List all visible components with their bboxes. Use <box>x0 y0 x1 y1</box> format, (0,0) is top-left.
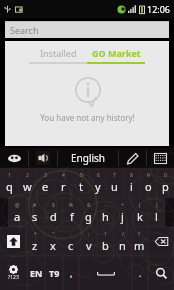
staticText: b <box>102 238 109 253</box>
button[interactable]: English <box>58 148 118 168</box>
button[interactable]: & <box>80 198 97 227</box>
button[interactable]: GO Market <box>87 47 145 64</box>
button[interactable]: T9 <box>45 256 63 290</box>
button[interactable]: 1 <box>0 168 18 198</box>
staticText: q <box>6 179 13 194</box>
button[interactable]: + <box>114 198 131 227</box>
staticText: Search <box>10 24 39 36</box>
staticText: 7 <box>113 172 116 179</box>
staticText: * <box>34 231 37 238</box>
staticText: 0 <box>164 172 167 179</box>
staticText: d <box>50 209 57 224</box>
button[interactable]: Shift <box>0 227 26 256</box>
button[interactable]: # <box>26 198 44 227</box>
button[interactable]: ( <box>131 198 148 227</box>
button[interactable]: - <box>97 198 114 227</box>
staticText: " <box>52 231 55 238</box>
staticText: h <box>102 209 109 224</box>
staticText: + <box>121 202 124 209</box>
button[interactable]: Space <box>79 256 132 290</box>
button[interactable]: 5 <box>72 168 89 198</box>
staticText: c <box>68 238 74 253</box>
staticText: # <box>33 202 37 209</box>
button[interactable]: " <box>44 227 62 256</box>
button[interactable]: Symbols <box>0 256 27 290</box>
button[interactable]: / <box>114 227 131 256</box>
staticText: n <box>119 238 126 253</box>
staticText: 3 <box>44 172 47 179</box>
button[interactable]: ! <box>97 227 114 256</box>
staticText: GO Market <box>92 47 141 59</box>
staticText: l <box>155 209 158 224</box>
button[interactable]: Voice input <box>29 148 57 168</box>
staticText: : <box>70 231 72 238</box>
staticText: You have not any history! <box>40 112 135 123</box>
staticText: w <box>23 179 32 194</box>
staticText: ! <box>105 231 107 238</box>
staticText: s <box>32 209 38 224</box>
button[interactable]: 9 <box>140 168 157 198</box>
staticText: i <box>130 179 133 194</box>
button[interactable]: @ <box>8 198 26 227</box>
staticText: T9 <box>49 267 60 279</box>
button[interactable]: Search <box>5 21 169 38</box>
staticText: - <box>105 202 107 209</box>
staticText: f <box>70 209 74 224</box>
staticText: a <box>14 209 21 224</box>
staticText: 6 <box>97 172 100 179</box>
button[interactable]: . <box>132 256 148 290</box>
button[interactable]: Search <box>148 256 174 290</box>
button[interactable]: 4 <box>54 168 72 198</box>
staticText: y <box>95 179 101 194</box>
button[interactable]: : <box>62 227 80 256</box>
staticText: z <box>32 238 38 253</box>
staticText: 8 <box>130 172 133 179</box>
staticText: j <box>121 209 124 224</box>
button[interactable]: Handwriting <box>119 148 146 168</box>
button[interactable]: ; <box>80 227 97 256</box>
staticText: / <box>122 231 124 238</box>
staticText: 5 <box>80 172 83 179</box>
staticText: o <box>145 179 152 194</box>
button[interactable]: 8 <box>123 168 140 198</box>
staticText: ; <box>88 231 90 238</box>
staticText: p <box>162 179 169 194</box>
button[interactable]: , <box>63 256 79 290</box>
button[interactable]: % <box>62 198 80 227</box>
button[interactable]: 0 <box>157 168 174 198</box>
button[interactable]: 2 <box>18 168 36 198</box>
staticText: & <box>87 202 91 209</box>
button[interactable]: Installed <box>29 47 87 64</box>
button[interactable]: ) <box>148 198 165 227</box>
staticText: x <box>50 238 56 253</box>
staticText: 12:06 <box>147 3 171 15</box>
staticText: English <box>71 151 106 165</box>
staticText: . <box>139 267 142 279</box>
button[interactable]: Keyboard layout <box>147 148 174 168</box>
button[interactable]: 6 <box>89 168 106 198</box>
staticText: r <box>61 179 66 194</box>
staticText: 1 <box>8 172 11 179</box>
staticText: 4 <box>62 172 65 179</box>
button[interactable]: $ <box>44 198 62 227</box>
button[interactable]: Backspace <box>148 227 174 256</box>
staticText: 9 <box>147 172 150 179</box>
staticText: Installed <box>40 47 77 59</box>
staticText: $ <box>52 202 55 209</box>
button[interactable]: EN <box>27 256 45 290</box>
staticText: v <box>86 238 92 253</box>
staticText: , <box>70 267 73 279</box>
staticText: m <box>134 238 145 253</box>
staticText: u <box>111 179 118 194</box>
button[interactable]: Emoji <box>0 148 28 168</box>
staticText: ( <box>139 202 141 209</box>
button[interactable]: ? <box>131 227 148 256</box>
staticText: ) <box>156 202 158 209</box>
button[interactable]: 7 <box>106 168 123 198</box>
button[interactable]: * <box>26 227 44 256</box>
button[interactable]: 3 <box>36 168 54 198</box>
staticText: e <box>42 179 49 194</box>
staticText: k <box>137 209 143 224</box>
staticText: % <box>69 202 74 209</box>
staticText: @ <box>15 202 20 209</box>
